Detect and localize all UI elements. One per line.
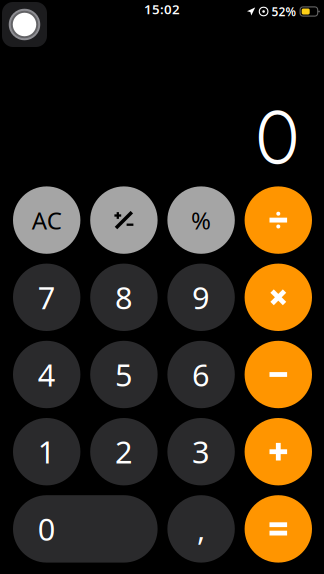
- button[interactable]: [245, 186, 312, 254]
- button[interactable]: 4: [13, 341, 80, 408]
- staticText: 7: [38, 277, 56, 318]
- button[interactable]: [245, 418, 312, 485]
- staticText: ,: [197, 508, 205, 549]
- staticText: 4: [38, 354, 56, 395]
- staticText: 0: [38, 508, 56, 549]
- button[interactable]: 5: [90, 341, 158, 408]
- staticText: 5: [115, 354, 133, 395]
- staticText: %: [191, 204, 211, 236]
- staticText: AC: [32, 204, 62, 236]
- button[interactable]: 1: [13, 418, 80, 485]
- staticText: 9: [192, 277, 210, 318]
- button[interactable]: AssistiveTouch: [2, 2, 47, 47]
- staticText: 2: [115, 431, 133, 472]
- button[interactable]: [245, 264, 312, 331]
- staticText: 52%: [272, 3, 297, 19]
- button[interactable]: [245, 495, 312, 563]
- button[interactable]: 2: [90, 418, 158, 485]
- button[interactable]: [90, 186, 158, 254]
- staticText: 8: [115, 277, 133, 318]
- button[interactable]: ,: [167, 495, 235, 563]
- staticText: 3: [192, 431, 210, 472]
- button[interactable]: %: [167, 186, 235, 254]
- button[interactable]: 0: [13, 495, 158, 563]
- button[interactable]: 7: [13, 264, 80, 331]
- staticText: 0: [256, 93, 299, 180]
- staticText: 6: [192, 354, 210, 395]
- button[interactable]: AC: [13, 186, 80, 254]
- button[interactable]: 3: [167, 418, 235, 485]
- staticText: 1: [38, 431, 56, 472]
- button[interactable]: [245, 341, 312, 408]
- staticText: 15:02: [144, 0, 180, 18]
- button[interactable]: 8: [90, 264, 158, 331]
- button[interactable]: 9: [167, 264, 235, 331]
- button[interactable]: 6: [167, 341, 235, 408]
